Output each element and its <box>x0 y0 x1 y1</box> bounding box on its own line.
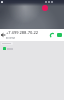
staticText: +7 499 288-70-22 <box>6 30 39 35</box>
button[interactable]: Back <box>1 29 5 41</box>
button[interactable] <box>1 42 13 45</box>
button[interactable]: Video call <box>56 29 63 41</box>
button[interactable]: Voice call <box>49 29 56 41</box>
staticText: в сети <box>6 36 15 40</box>
